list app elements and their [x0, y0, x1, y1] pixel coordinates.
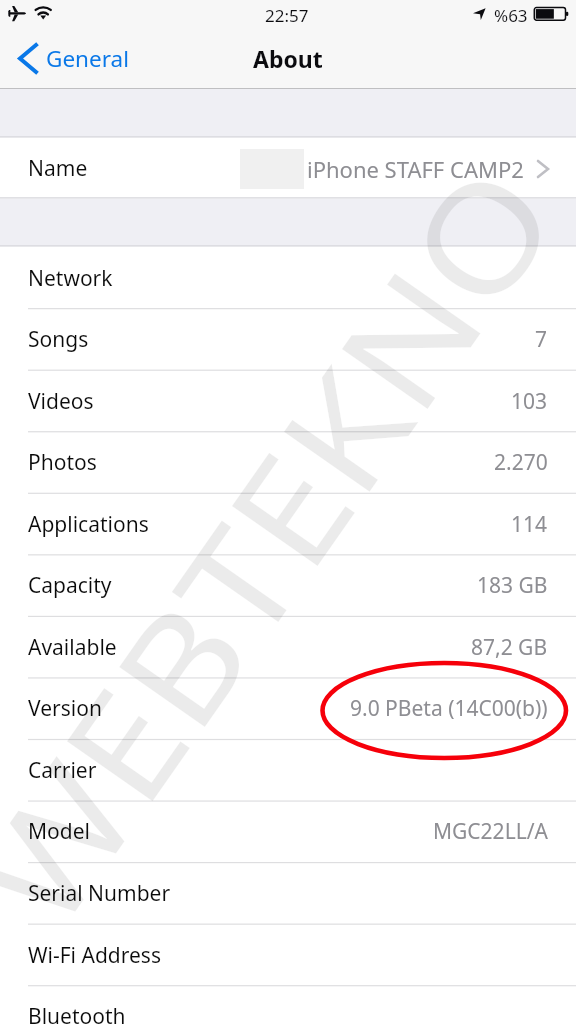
staticText: MGC22LL/A [433, 817, 548, 846]
staticText: Bluetooth [28, 1002, 126, 1024]
staticText: Wi-Fi Address [28, 941, 161, 970]
staticText: 22:57 [265, 4, 309, 27]
staticText: Version [28, 694, 102, 723]
button[interactable]: Model [0, 800, 576, 862]
staticText: 2.270 [494, 448, 548, 477]
staticText: Carrier [28, 756, 97, 785]
button[interactable]: Videos [0, 370, 576, 432]
staticText: General [46, 43, 129, 74]
button[interactable]: Available [0, 616, 576, 678]
button[interactable]: Version [0, 677, 576, 739]
staticText: %63 [494, 4, 528, 27]
staticText: Songs [28, 325, 89, 354]
button[interactable]: Name [0, 138, 576, 199]
button[interactable]: Serial Number [0, 862, 576, 924]
button[interactable]: General [0, 35, 139, 81]
staticText: Applications [28, 510, 149, 539]
staticText: About [253, 43, 323, 74]
button[interactable]: Carrier [0, 739, 576, 801]
staticText: Network [28, 264, 113, 293]
button[interactable]: Applications [0, 493, 576, 555]
staticText: Available [28, 633, 117, 662]
staticText: 7 [535, 325, 548, 354]
staticText: Serial Number [28, 879, 171, 908]
staticText: Photos [28, 448, 97, 477]
button[interactable]: Capacity [0, 554, 576, 616]
staticText: Model [28, 817, 90, 846]
staticText: Name [28, 154, 88, 183]
button[interactable]: Bluetooth [0, 985, 576, 1024]
button[interactable]: Wi-Fi Address [0, 924, 576, 986]
staticText: Videos [28, 387, 94, 416]
staticText: 114 [511, 510, 548, 539]
button[interactable]: Network [0, 247, 576, 309]
staticText: iPhone STAFF CAMP2 [307, 154, 524, 184]
staticText: 9.0 PBeta (14C00(b)) [350, 694, 548, 723]
staticText: 103 [511, 387, 548, 416]
button[interactable]: Photos [0, 431, 576, 493]
button[interactable]: Songs [0, 308, 576, 370]
other: Highlighted version [0, 0, 576, 1024]
staticText: 87,2 GB [471, 633, 548, 662]
staticText: Capacity [28, 571, 112, 600]
staticText: 183 GB [477, 571, 548, 600]
